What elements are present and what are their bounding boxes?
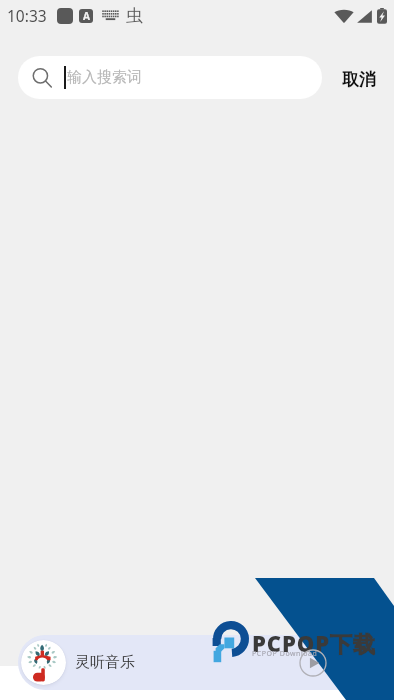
button[interactable]: 取消	[330, 57, 388, 101]
staticText: 输入搜索词	[67, 68, 142, 87]
staticText: 灵听音乐	[75, 653, 135, 672]
staticText: A	[83, 9, 90, 23]
staticText: 虫	[126, 5, 143, 26]
button[interactable]: 灵听音乐	[18, 635, 394, 690]
button[interactable]: 输入搜索词	[18, 56, 322, 99]
staticText: PCPOP下载	[252, 628, 376, 658]
staticText: 10:33	[7, 5, 47, 26]
staticText: 取消	[342, 69, 376, 90]
staticText: PCPOP Download	[252, 649, 318, 659]
